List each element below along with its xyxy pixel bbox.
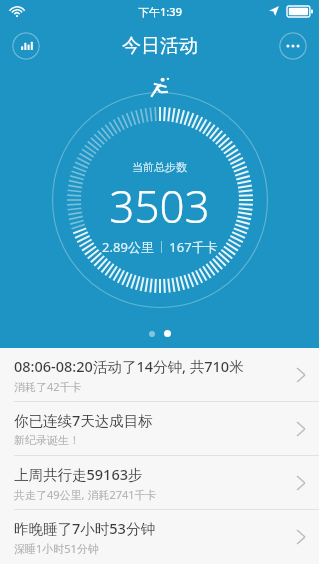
staticText: 共走了49公里, 消耗2741千卡	[14, 487, 157, 502]
staticText: 2.89公里	[102, 238, 154, 256]
staticText: 昨晚睡了7小时53分钟	[14, 518, 155, 538]
staticText: 深睡1小时51分钟	[14, 541, 99, 556]
button[interactable]: 你已连续7天达成目标	[0, 402, 319, 455]
button[interactable]: 上周共行走59163步	[0, 456, 319, 509]
button[interactable]: Statistics	[12, 32, 40, 60]
button[interactable]: 08:06-08:20活动了14分钟, 共710米	[0, 348, 319, 401]
staticText: 你已连续7天达成目标	[14, 410, 153, 430]
button[interactable]: 昨晚睡了7小时53分钟	[0, 510, 319, 563]
staticText: 3503	[109, 176, 210, 236]
staticText: 新纪录诞生！	[14, 433, 80, 447]
staticText: 08:06-08:20活动了14分钟, 共710米	[14, 356, 244, 376]
staticText: 上周共行走59163步	[14, 464, 143, 484]
staticText: 消耗了42千卡	[14, 379, 82, 394]
other: Running	[149, 76, 171, 98]
staticText: 当前总步数	[132, 160, 187, 174]
staticText: 下午1:39	[138, 4, 182, 19]
staticText: 今日活动	[122, 34, 198, 58]
button[interactable]: More options	[279, 32, 307, 60]
staticText: 167千卡	[169, 238, 218, 256]
